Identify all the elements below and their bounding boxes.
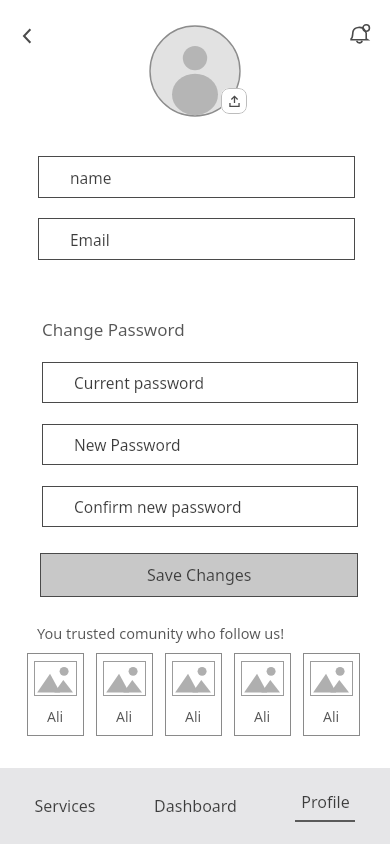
button[interactable]: Upload photo (221, 88, 247, 114)
button[interactable]: Ali (303, 653, 360, 736)
button[interactable]: Ali (165, 653, 222, 736)
button[interactable]: Back (8, 16, 48, 56)
button[interactable]: Ali (27, 653, 84, 736)
staticText: Profile (301, 791, 350, 813)
staticText: Ali (185, 707, 202, 726)
staticText: Email (70, 229, 110, 250)
staticText: Ali (323, 707, 340, 726)
button[interactable]: Profile (260, 768, 390, 844)
staticText: Ali (254, 707, 271, 726)
staticText: Ali (116, 707, 133, 726)
staticText: name (70, 167, 112, 188)
button[interactable]: New Password (42, 424, 358, 465)
button[interactable]: Dashboard (130, 768, 260, 844)
button[interactable]: Ali (96, 653, 153, 736)
staticText: Dashboard (154, 795, 237, 817)
button[interactable]: Confirm new password (42, 486, 358, 527)
button[interactable]: Save Changes (40, 553, 358, 597)
staticText: Services (34, 795, 96, 817)
staticText: You trusted comunity who follow us! (37, 623, 285, 643)
button[interactable]: Email (38, 218, 355, 260)
staticText: Change Password (42, 318, 185, 341)
staticText: Confirm new password (74, 496, 242, 517)
button[interactable]: name (38, 156, 355, 198)
button[interactable]: Notifications (338, 14, 380, 56)
staticText: New Password (74, 434, 181, 455)
staticText: Current password (74, 372, 205, 393)
button[interactable]: Current password (42, 362, 358, 403)
staticText: Save Changes (147, 564, 252, 586)
button[interactable]: Services (0, 768, 130, 844)
staticText: Ali (47, 707, 64, 726)
button[interactable]: Ali (234, 653, 291, 736)
